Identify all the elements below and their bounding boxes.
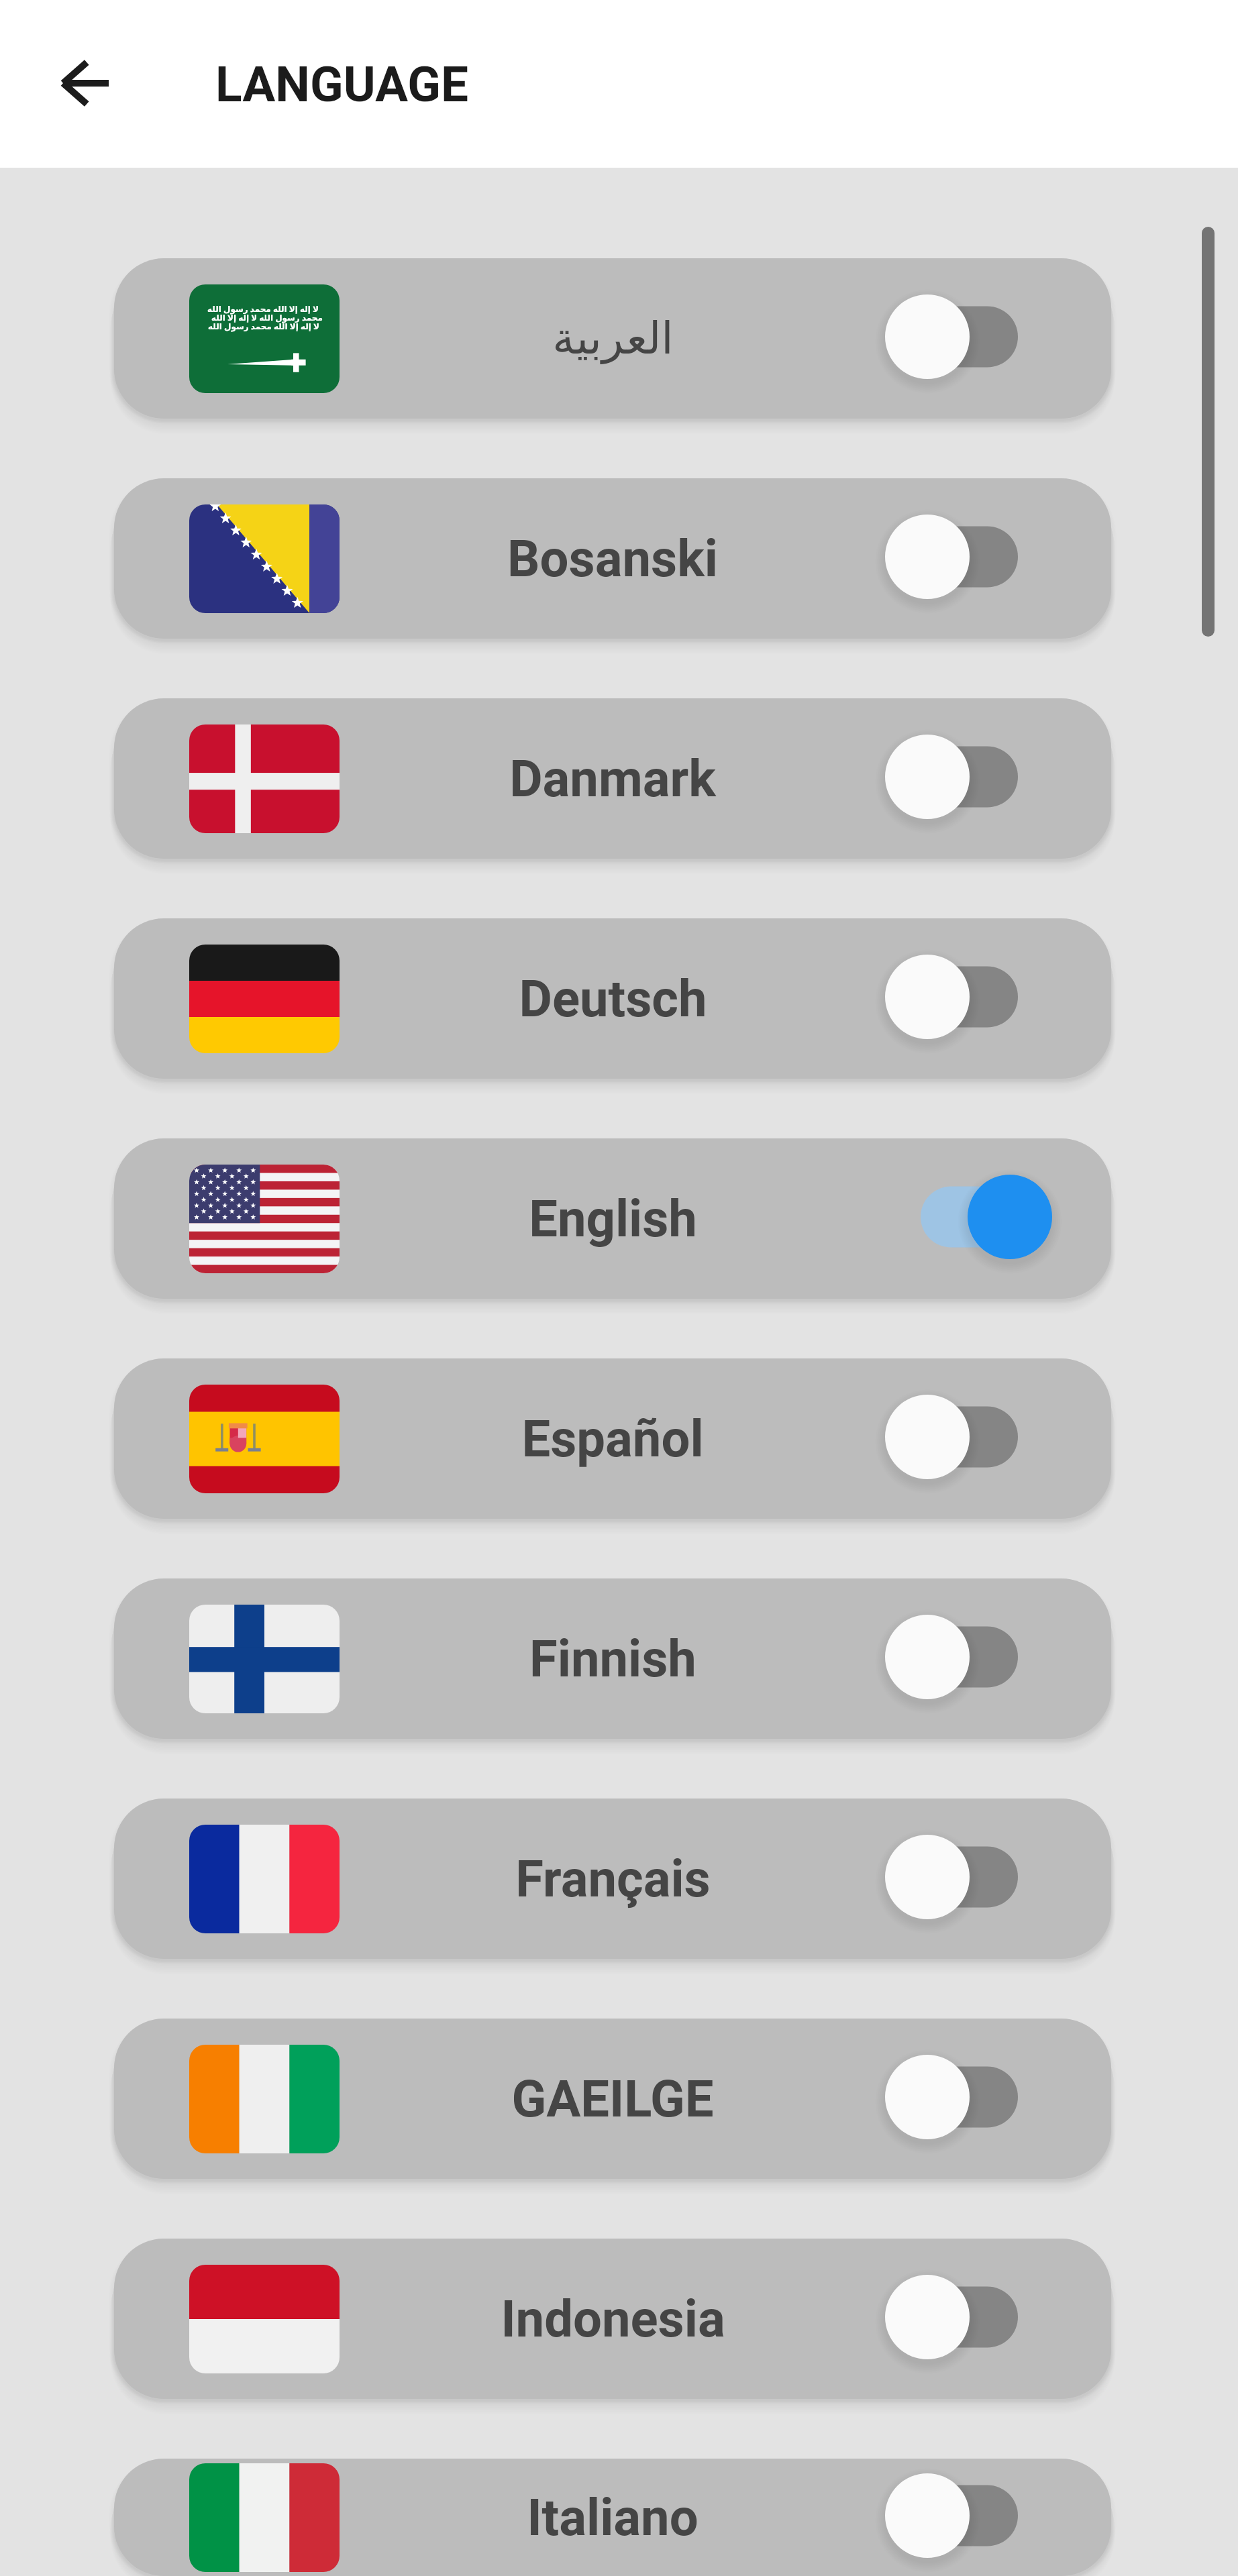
- staticText: Italiano: [527, 2487, 699, 2547]
- staticText: Français: [515, 1849, 711, 1909]
- staticText: Finnish: [529, 1629, 697, 1688]
- staticText: Español: [521, 1409, 704, 1468]
- staticText: LANGUAGE: [215, 56, 469, 113]
- button[interactable]: Off: [884, 285, 1067, 392]
- staticText: لا إله إلا الله محمد رسول الله: [207, 303, 319, 314]
- button[interactable]: لا إله إلا الله محمد رسول الله: [114, 258, 1111, 419]
- button[interactable]: Danmark: [114, 698, 1111, 859]
- staticText: English: [529, 1189, 697, 1248]
- button[interactable]: On: [884, 1165, 1067, 1273]
- staticText: Danmark: [509, 749, 716, 808]
- staticText: محمد رسول الله لا إله إلا الله: [211, 312, 323, 323]
- button[interactable]: Off: [884, 1605, 1067, 1713]
- staticText: Indonesia: [501, 2289, 725, 2349]
- button[interactable]: Italiano: [114, 2459, 1111, 2576]
- staticText: Deutsch: [519, 969, 707, 1028]
- button[interactable]: Back: [38, 36, 132, 130]
- button[interactable]: Bosanski: [114, 478, 1111, 639]
- button[interactable]: Off: [884, 725, 1067, 833]
- button[interactable]: Off: [884, 2464, 1067, 2571]
- button[interactable]: English: [114, 1138, 1111, 1299]
- staticText: العربية: [552, 313, 674, 364]
- button[interactable]: Off: [884, 945, 1067, 1053]
- button[interactable]: Español: [114, 1358, 1111, 1519]
- button[interactable]: Finnish: [114, 1578, 1111, 1739]
- staticText: Bosanski: [507, 529, 718, 588]
- button[interactable]: Off: [884, 2045, 1067, 2153]
- button[interactable]: Off: [884, 1825, 1067, 1933]
- staticText: لا إله إلا الله محمد رسول الله: [208, 321, 319, 331]
- button[interactable]: Indonesia: [114, 2239, 1111, 2399]
- button[interactable]: Off: [884, 505, 1067, 612]
- button[interactable]: Français: [114, 1799, 1111, 1959]
- staticText: GAEILGE: [511, 2069, 714, 2129]
- button[interactable]: Deutsch: [114, 918, 1111, 1079]
- button[interactable]: Off: [884, 2265, 1067, 2373]
- button[interactable]: Off: [884, 1385, 1067, 1493]
- button[interactable]: GAEILGE: [114, 2019, 1111, 2179]
